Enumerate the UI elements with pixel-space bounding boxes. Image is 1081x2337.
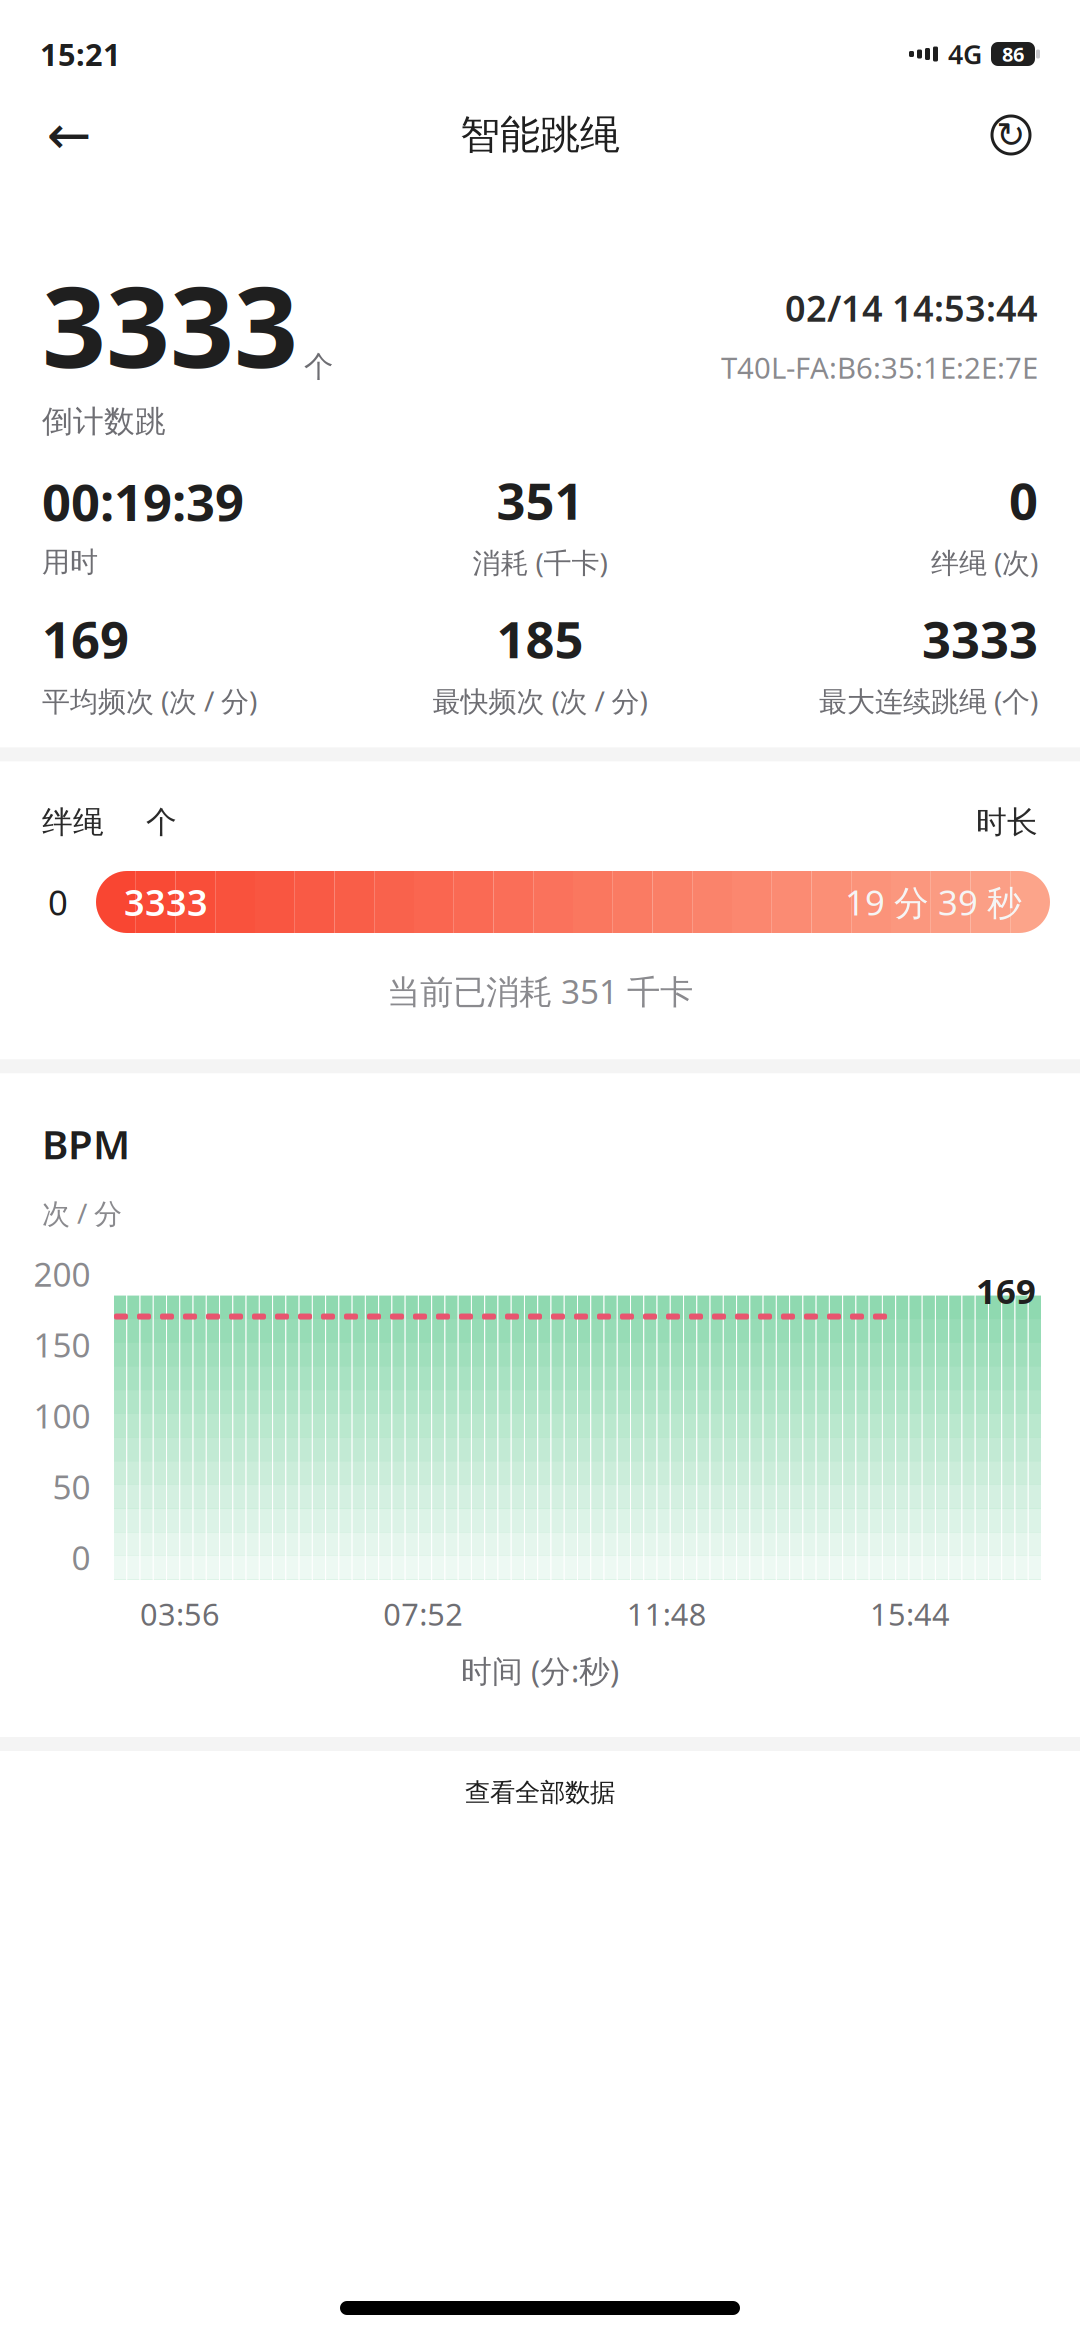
staticText: 智能跳绳: [460, 110, 620, 159]
staticText: 用时: [42, 545, 98, 579]
staticText: 消耗 (千卡): [472, 544, 607, 581]
staticText: 倒计数跳: [42, 403, 166, 440]
staticText: 查看全部数据: [465, 1777, 615, 1808]
staticText: 当前已消耗 351 千卡: [387, 969, 693, 1013]
staticText: 15:21: [40, 34, 121, 74]
staticText: 次 / 分: [42, 1194, 122, 1232]
staticText: 个: [304, 349, 333, 385]
staticText: 200: [33, 1252, 90, 1296]
staticText: 169: [42, 605, 129, 672]
staticText: 50: [52, 1464, 90, 1509]
staticText: 3333: [922, 605, 1038, 672]
staticText: 绊绳: [42, 803, 104, 841]
staticText: 4G: [948, 36, 982, 72]
staticText: 11:48: [627, 1594, 707, 1634]
staticText: 150: [33, 1322, 90, 1367]
staticText: 00:19:39: [42, 468, 244, 535]
staticText: 86: [1002, 41, 1024, 67]
staticText: 0: [48, 879, 68, 925]
staticText: 02/14 14:53:44: [785, 284, 1038, 332]
button[interactable]: Refresh: [976, 100, 1046, 170]
staticText: 3333: [124, 878, 208, 926]
staticText: ↻: [996, 115, 1025, 155]
staticText: 100: [33, 1393, 90, 1438]
staticText: 绊绳 (次): [931, 544, 1038, 581]
staticText: BPM: [42, 1117, 130, 1170]
staticText: 19 分 39 秒: [845, 879, 1022, 925]
staticText: 0: [1009, 466, 1038, 534]
staticText: 185: [496, 605, 583, 672]
staticText: 时长: [976, 803, 1038, 841]
staticText: 169: [976, 1267, 1036, 1313]
staticText: 个: [146, 803, 177, 841]
staticText: 351: [496, 466, 583, 534]
staticText: 最快频次 (次 / 分): [432, 682, 647, 719]
staticText: ←: [46, 105, 91, 165]
staticText: 15:44: [870, 1594, 950, 1634]
staticText: 最大连续跳绳 (个): [819, 682, 1038, 719]
button[interactable]: Back: [34, 100, 104, 170]
staticText: 平均频次 (次 / 分): [42, 682, 257, 719]
staticText: T40L-FA:B6:35:1E:2E:7E: [721, 348, 1038, 387]
button[interactable]: 查看全部数据: [0, 1751, 1080, 1834]
staticText: 时间 (分:秒): [461, 1650, 619, 1691]
staticText: 3333: [42, 250, 298, 399]
staticText: 07:52: [383, 1594, 463, 1634]
staticText: 03:56: [140, 1594, 220, 1634]
staticText: 0: [71, 1535, 90, 1580]
